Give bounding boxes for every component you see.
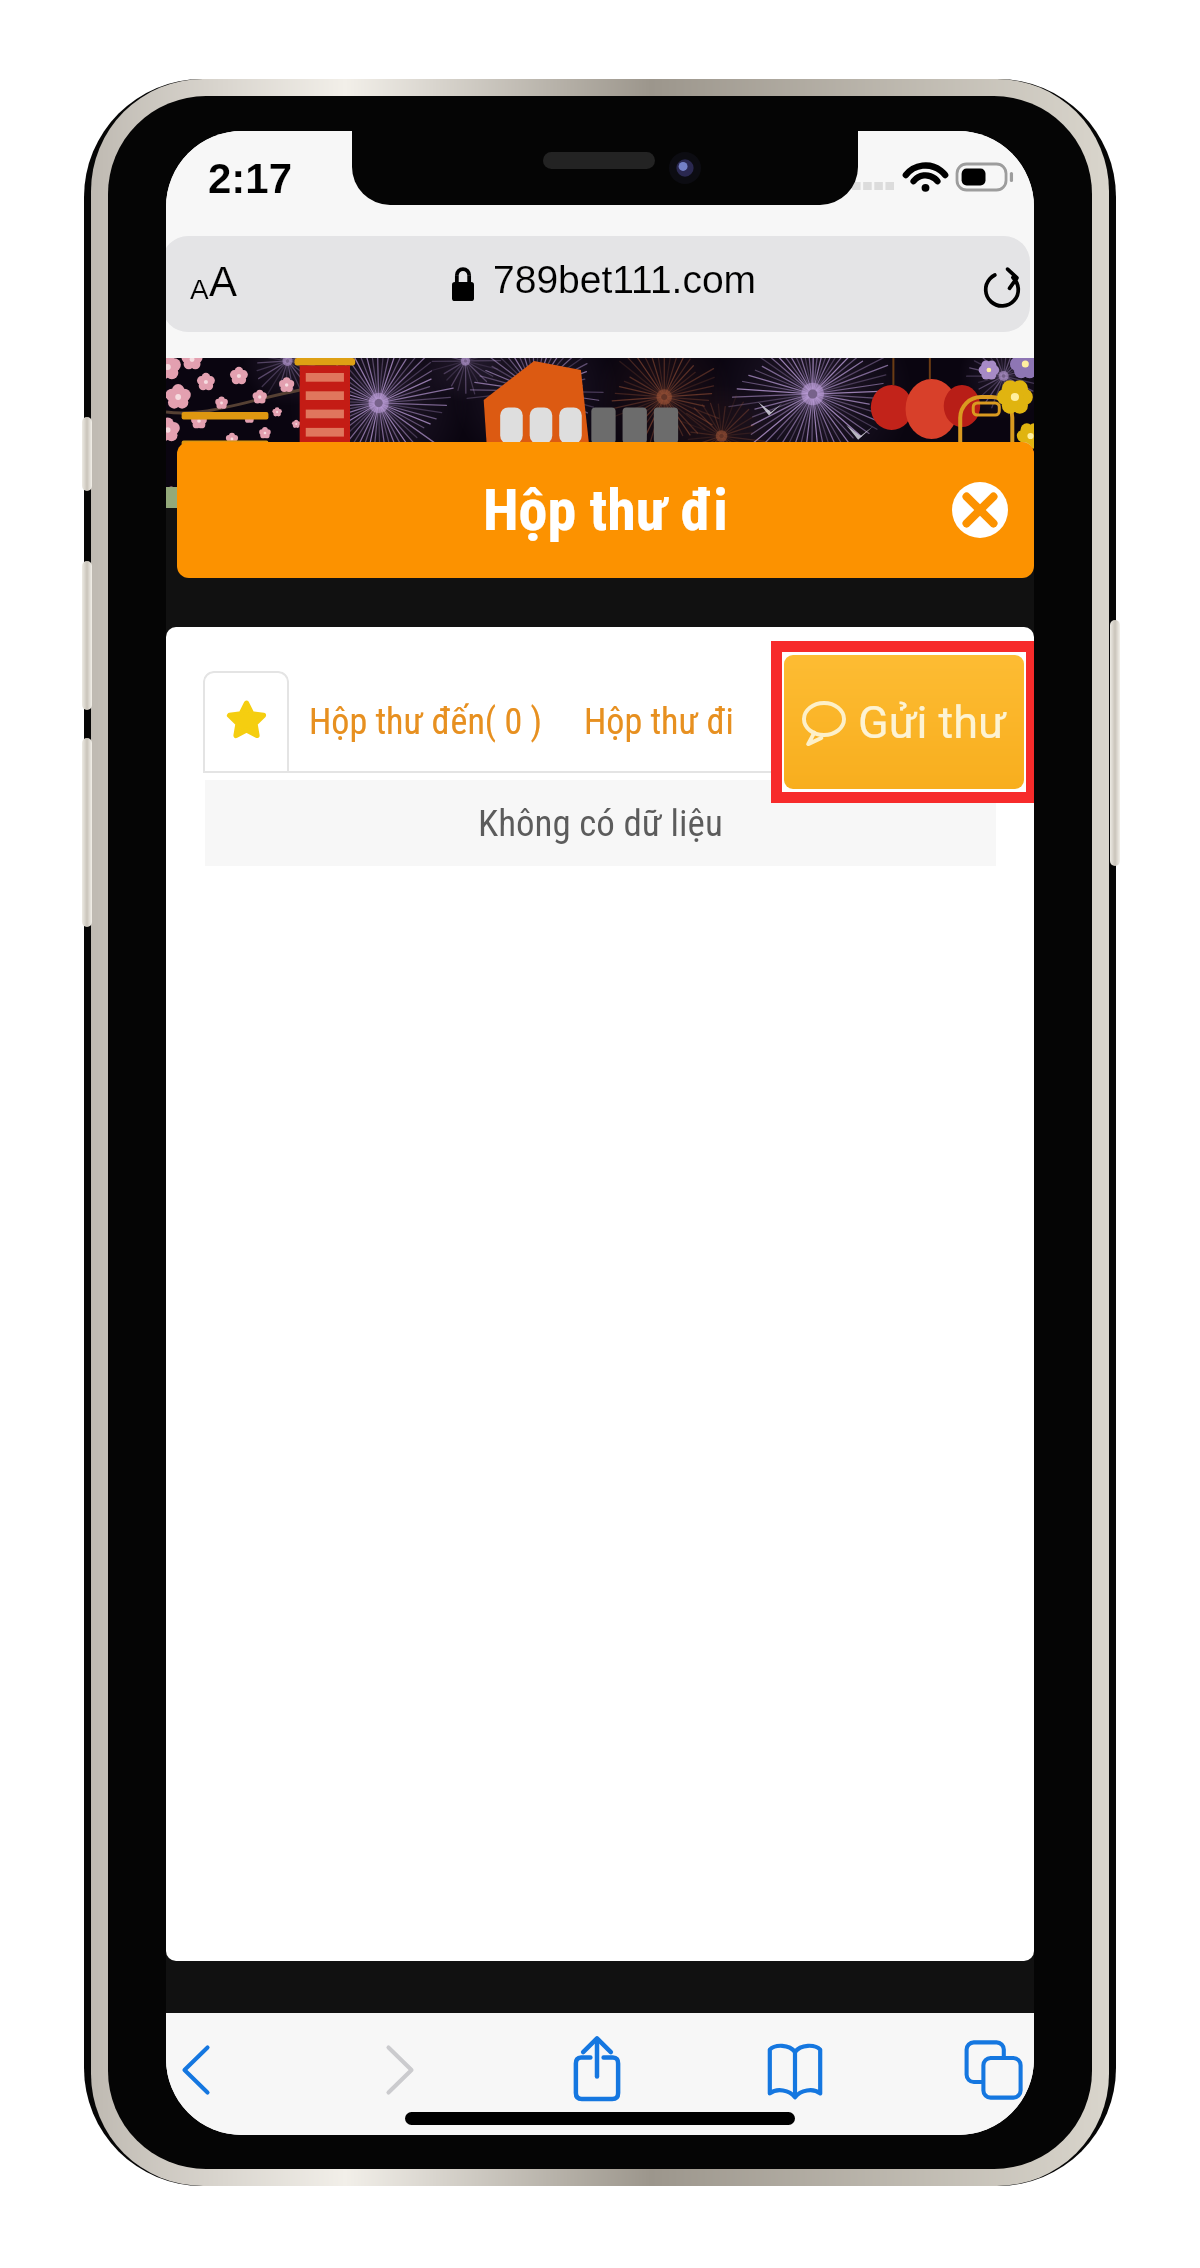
other: Text size options [190,258,238,305]
button[interactable]: Hộp thư đến( 0 ) [309,671,542,772]
staticText: 789bet111.com [493,258,757,302]
staticText: Gửi thư [858,696,1006,749]
button[interactable]: Gửi thư [784,655,1024,789]
button[interactable]: Hộp thư đi [584,671,734,772]
button[interactable]: Back [166,2024,242,2116]
staticText: A [190,274,209,305]
button[interactable]: Hộp thư đi [177,442,1034,578]
staticText: Hộp thư đến( 0 ) [309,701,542,743]
button[interactable]: Bookmarks [749,2025,841,2117]
button[interactable]: Text size options [166,236,1030,332]
button[interactable]: Reload page [980,265,1024,309]
button[interactable]: Share [551,2022,643,2114]
staticText: Hộp thư đi [483,476,728,544]
staticText: 2:17 [208,155,293,202]
staticText: Không có dữ liệu [478,802,723,845]
staticText: A [209,258,238,305]
button[interactable]: Favourites [203,671,289,772]
button[interactable]: Close [952,482,1008,538]
staticText: Hộp thư đi [584,701,734,743]
button[interactable]: Tabs [947,2024,1034,2116]
button[interactable]: Forward [354,2024,446,2116]
